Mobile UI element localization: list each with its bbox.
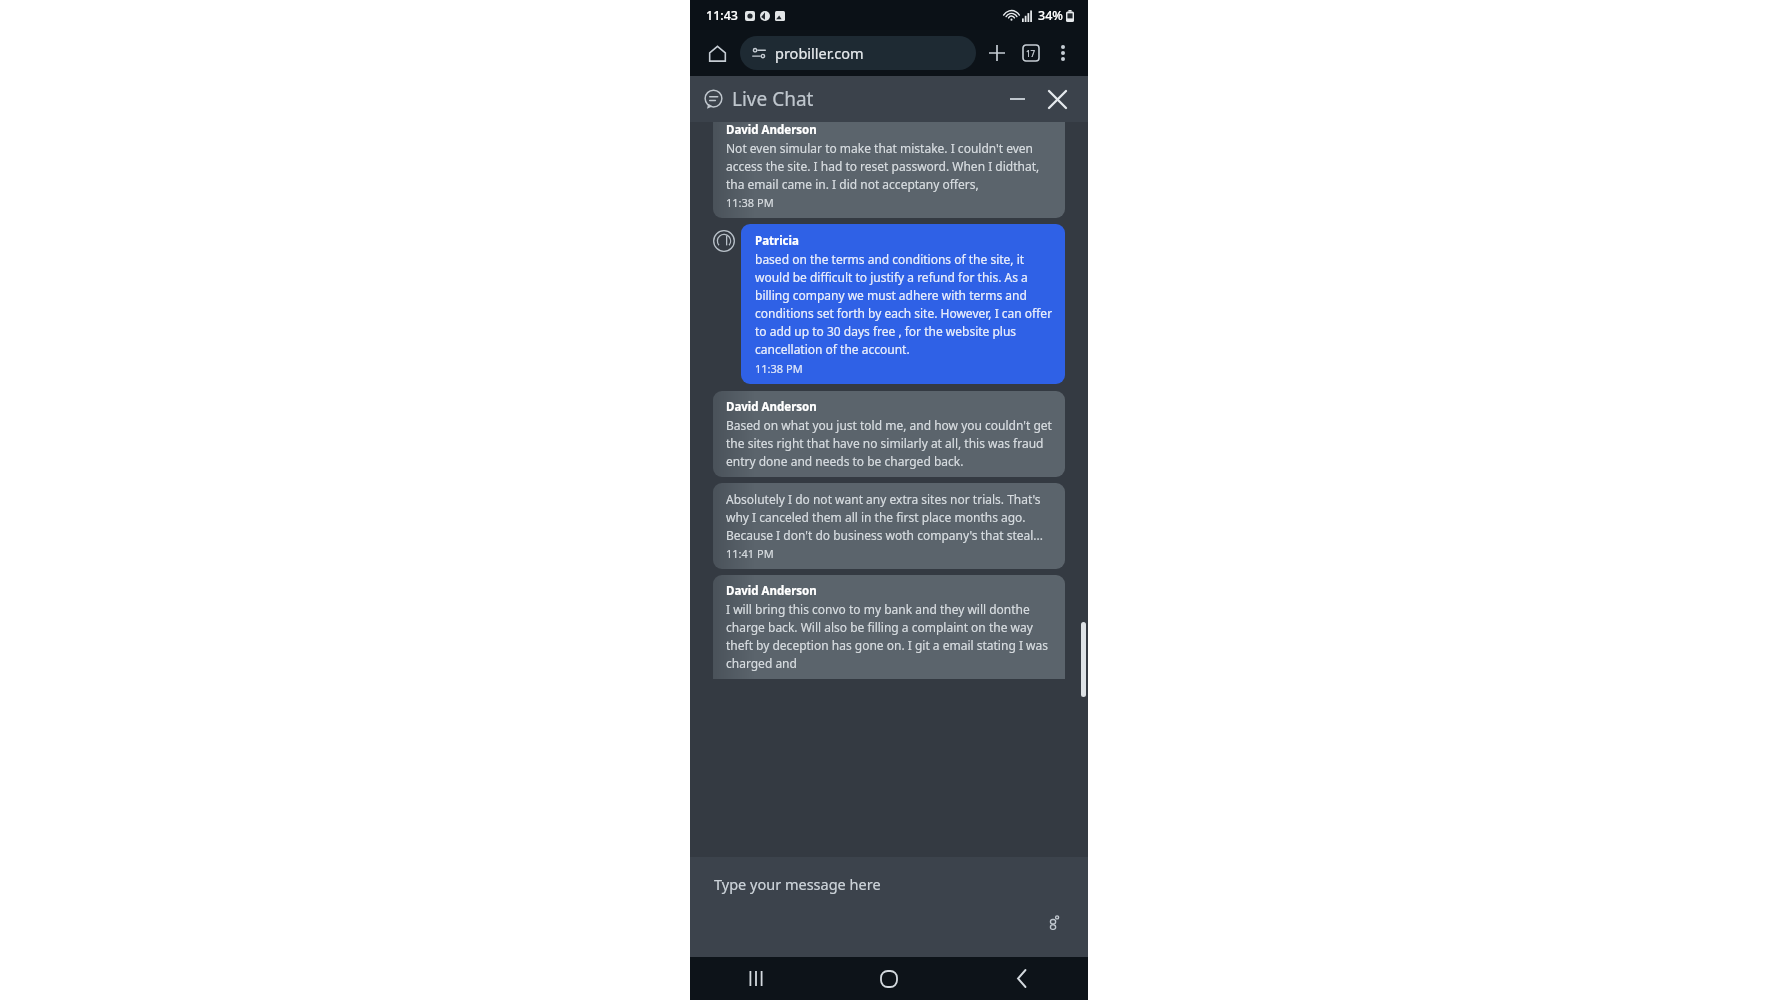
button[interactable]: Recent apps [690,957,822,1000]
button[interactable]: More options [1048,38,1078,68]
staticText: Absolutely I do not want any extra sites… [726,491,1055,543]
button[interactable]: Patricia [741,224,1065,384]
button[interactable]: Absolutely I do not want any extra sites… [713,483,1065,569]
button[interactable]: Back [955,957,1088,1000]
button[interactable]: Home [822,957,955,1000]
button[interactable]: Home [700,36,734,70]
staticText: 11:38 PM [726,195,774,210]
staticText: 17 [1026,48,1036,59]
button[interactable]: probiller.com [740,36,976,70]
staticText: Patricia [755,233,799,249]
button[interactable]: David Anderson [713,575,1065,679]
staticText: based on the terms and conditions of the… [755,251,1055,357]
staticText: 11:43 [706,7,739,24]
button[interactable]: Attach file [1040,909,1066,935]
button[interactable]: New tab [980,36,1014,70]
staticText: David Anderson [726,583,817,599]
staticText: I will bring this convo to my bank and t… [726,601,1055,671]
staticText: Type your message here [714,874,881,894]
button[interactable]: Minimize [1000,82,1034,116]
staticText: probiller.com [775,43,864,63]
staticText: Based on what you just told me, and how … [726,417,1055,469]
staticText: 11:38 PM [755,361,803,376]
staticText: Not even simular to make that mistake. I… [726,140,1055,192]
staticText: 34% [1038,7,1063,24]
staticText: David Anderson [726,122,817,138]
staticText: 11:41 PM [726,546,774,561]
button[interactable]: David Anderson [713,122,1065,218]
button[interactable]: Close [1040,82,1074,116]
button[interactable]: David Anderson [713,391,1065,477]
staticText: Live Chat [732,86,814,112]
staticText: David Anderson [726,399,817,415]
button[interactable]: Tabs [1014,36,1048,70]
